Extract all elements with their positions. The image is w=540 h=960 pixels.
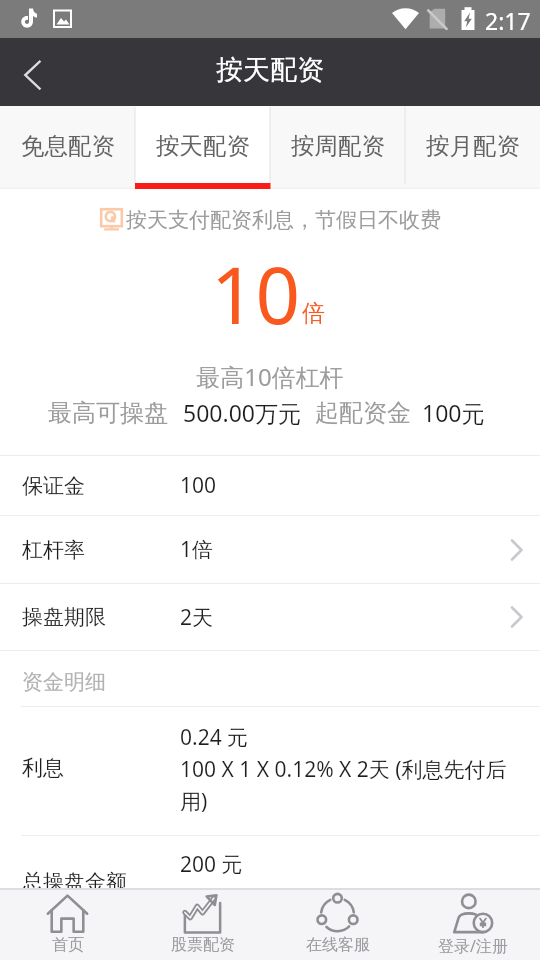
staticText: 保证金	[22, 473, 85, 499]
button[interactable]: 免息配资	[0, 106, 135, 189]
staticText: 杠杆率	[22, 537, 85, 563]
button[interactable]: 股票配资	[135, 890, 270, 960]
staticText: 资金明细	[22, 669, 106, 695]
staticText: 按月配资	[426, 131, 520, 161]
staticText: 在线客服	[306, 935, 370, 955]
staticText: 按周配资	[291, 131, 385, 161]
button[interactable]: 按天配资	[135, 106, 270, 189]
button[interactable]: Back	[0, 40, 64, 104]
staticText: 200 元	[180, 850, 243, 879]
staticText: 首页	[52, 935, 84, 955]
button[interactable]: 操盘期限	[0, 584, 540, 650]
staticText: 总操盘金额	[22, 869, 127, 888]
staticText: 免息配资	[21, 131, 115, 161]
staticText: 1倍	[180, 535, 214, 564]
button[interactable]: 保证金	[0, 456, 540, 515]
staticText: 2天	[180, 603, 214, 632]
staticText: 最高可操盘	[48, 398, 168, 428]
staticText: 2:17	[485, 5, 531, 36]
button[interactable]: 在线客服	[270, 890, 405, 960]
staticText: 10	[211, 241, 301, 347]
staticText: 按天配资	[156, 131, 250, 161]
staticText: 利息	[22, 755, 64, 781]
button[interactable]: 首页	[0, 890, 135, 960]
button[interactable]: 登录/注册	[405, 890, 540, 960]
staticText: 倍	[302, 299, 325, 328]
button[interactable]: 杠杆率	[0, 516, 540, 583]
staticText: 登录/注册	[438, 935, 508, 957]
staticText: 最高10倍杠杆	[196, 360, 344, 393]
button[interactable]: 按月配资	[405, 106, 540, 189]
staticText: 100元	[422, 397, 485, 428]
staticText: 股票配资	[171, 935, 235, 955]
staticText: 500.00万元	[183, 397, 301, 428]
staticText: 按天配资	[216, 53, 324, 87]
staticText: 100	[180, 471, 217, 500]
button[interactable]: 按周配资	[270, 106, 405, 189]
staticText: 操盘期限	[22, 604, 106, 630]
staticText: 按天支付配资利息，节假日不收费	[126, 207, 441, 233]
staticText: 起配资金	[315, 398, 411, 428]
staticText: 0.24 元	[180, 723, 249, 752]
staticText: 100 X 1 X 0.12% X 2天 (利息先付后用)	[180, 755, 512, 815]
